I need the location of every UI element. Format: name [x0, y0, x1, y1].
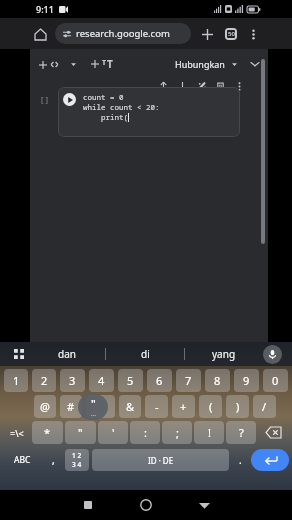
button[interactable]: Move up — [157, 80, 170, 93]
button[interactable]: 7 — [176, 369, 201, 392]
button[interactable]: . — [229, 447, 251, 472]
button[interactable]: di — [106, 342, 184, 366]
staticText: 9:11 — [36, 3, 54, 15]
staticText: dan — [58, 347, 76, 361]
staticText: T — [102, 58, 107, 68]
button[interactable]: 2 — [32, 369, 56, 392]
button[interactable]: 9 — [234, 369, 259, 392]
staticText: 1 2 — [72, 451, 82, 460]
staticText: ··· — [91, 411, 96, 419]
button[interactable]: ? — [226, 421, 256, 444]
button[interactable]: - — [145, 395, 168, 418]
button[interactable]: dan — [28, 342, 105, 366]
button[interactable]: 5 — [118, 369, 143, 392]
button[interactable]: Numbers — [65, 449, 89, 471]
button[interactable]: ; — [162, 421, 192, 444]
button[interactable]: : — [130, 421, 160, 444]
button[interactable]: & — [119, 395, 141, 418]
button[interactable]: Back — [187, 490, 221, 520]
staticText: : — [144, 425, 147, 440]
staticText: * — [44, 425, 51, 440]
staticText: ' — [112, 425, 115, 440]
staticText: ABC — [14, 454, 31, 466]
button[interactable]: New tab — [197, 24, 217, 44]
button[interactable]: research.google.com — [55, 23, 191, 44]
staticText: / — [262, 399, 267, 414]
button[interactable]: Home — [129, 490, 163, 520]
button[interactable]: More cell actions — [233, 80, 246, 93]
button[interactable]: Recents — [71, 490, 105, 520]
button[interactable]: Home — [30, 24, 50, 44]
staticText: 50 — [228, 30, 235, 38]
button[interactable]: 3 — [60, 369, 85, 392]
button[interactable]: Backspace — [257, 421, 289, 444]
button[interactable]: " — [65, 421, 96, 444]
button[interactable]: Edit with AI — [195, 80, 208, 93]
button[interactable]: Tabs — [221, 24, 241, 44]
button[interactable]: 0 — [263, 369, 288, 392]
staticText: " — [91, 396, 96, 411]
staticText: 5 — [127, 373, 134, 388]
staticText: ( — [209, 399, 213, 414]
staticText: & — [126, 399, 135, 414]
button[interactable] — [36, 58, 62, 71]
button[interactable]: Delete cell — [214, 80, 227, 93]
staticText: while count < 20: — [83, 102, 160, 112]
button[interactable]: =\< — [3, 421, 31, 444]
button[interactable]: Voice input — [263, 345, 282, 364]
button[interactable] — [86, 395, 115, 418]
button[interactable]: 6 — [147, 369, 172, 392]
button[interactable]: T — [88, 55, 116, 73]
button[interactable]: Expand — [248, 57, 262, 71]
button[interactable]: ( — [199, 395, 222, 418]
staticText: 6 — [156, 373, 163, 388]
staticText: =\< — [10, 427, 24, 439]
button[interactable]: 4 — [89, 369, 114, 392]
button[interactable]: ID · DE — [92, 449, 229, 471]
button[interactable]: 1 — [4, 369, 28, 392]
button[interactable]: Code options — [68, 59, 79, 70]
staticText: ID · DE — [148, 455, 174, 466]
button[interactable]: 8 — [205, 369, 230, 392]
staticText: - — [155, 399, 159, 414]
staticText: 7 — [185, 373, 192, 388]
staticText: ; — [176, 425, 179, 440]
button[interactable]: ABC — [3, 447, 41, 472]
staticText: . — [239, 453, 242, 467]
staticText: @ — [40, 399, 50, 414]
button[interactable]: Toolbar — [10, 345, 28, 363]
staticText: ) — [236, 399, 240, 414]
button[interactable]: ' — [98, 421, 128, 444]
staticText: print( — [83, 112, 128, 122]
button[interactable]: Run cell — [63, 93, 76, 106]
staticText: 3 4 — [72, 460, 82, 469]
button[interactable]: Move down — [176, 80, 189, 93]
staticText: ! — [208, 425, 211, 440]
staticText: T — [107, 57, 113, 71]
button[interactable]: Run cell — [58, 87, 240, 137]
staticText: , — [52, 453, 55, 467]
staticText: + — [180, 399, 187, 414]
staticText: 0 — [272, 373, 279, 388]
staticText: count = 0 — [83, 92, 124, 102]
button[interactable]: # — [60, 395, 82, 418]
staticText: 3 — [69, 373, 76, 388]
staticText: ? — [239, 425, 244, 440]
button[interactable]: , — [41, 447, 65, 472]
staticText: 2 — [41, 373, 48, 388]
staticText: " — [78, 425, 83, 440]
staticText: 1 — [13, 373, 20, 388]
button[interactable]: yang — [185, 342, 263, 366]
button[interactable]: * — [32, 421, 63, 444]
button[interactable]: ! — [194, 421, 224, 444]
button[interactable]: / — [253, 395, 276, 418]
button[interactable]: @ — [34, 395, 56, 418]
button[interactable]: Hubungkan — [171, 55, 241, 73]
button[interactable]: Enter — [251, 449, 289, 471]
staticText: 4 — [98, 373, 105, 388]
staticText: 9 — [243, 373, 250, 388]
button[interactable]: ) — [226, 395, 249, 418]
staticText: Hubungkan — [175, 58, 225, 70]
button[interactable]: + — [172, 395, 195, 418]
button[interactable]: More options — [244, 25, 262, 43]
